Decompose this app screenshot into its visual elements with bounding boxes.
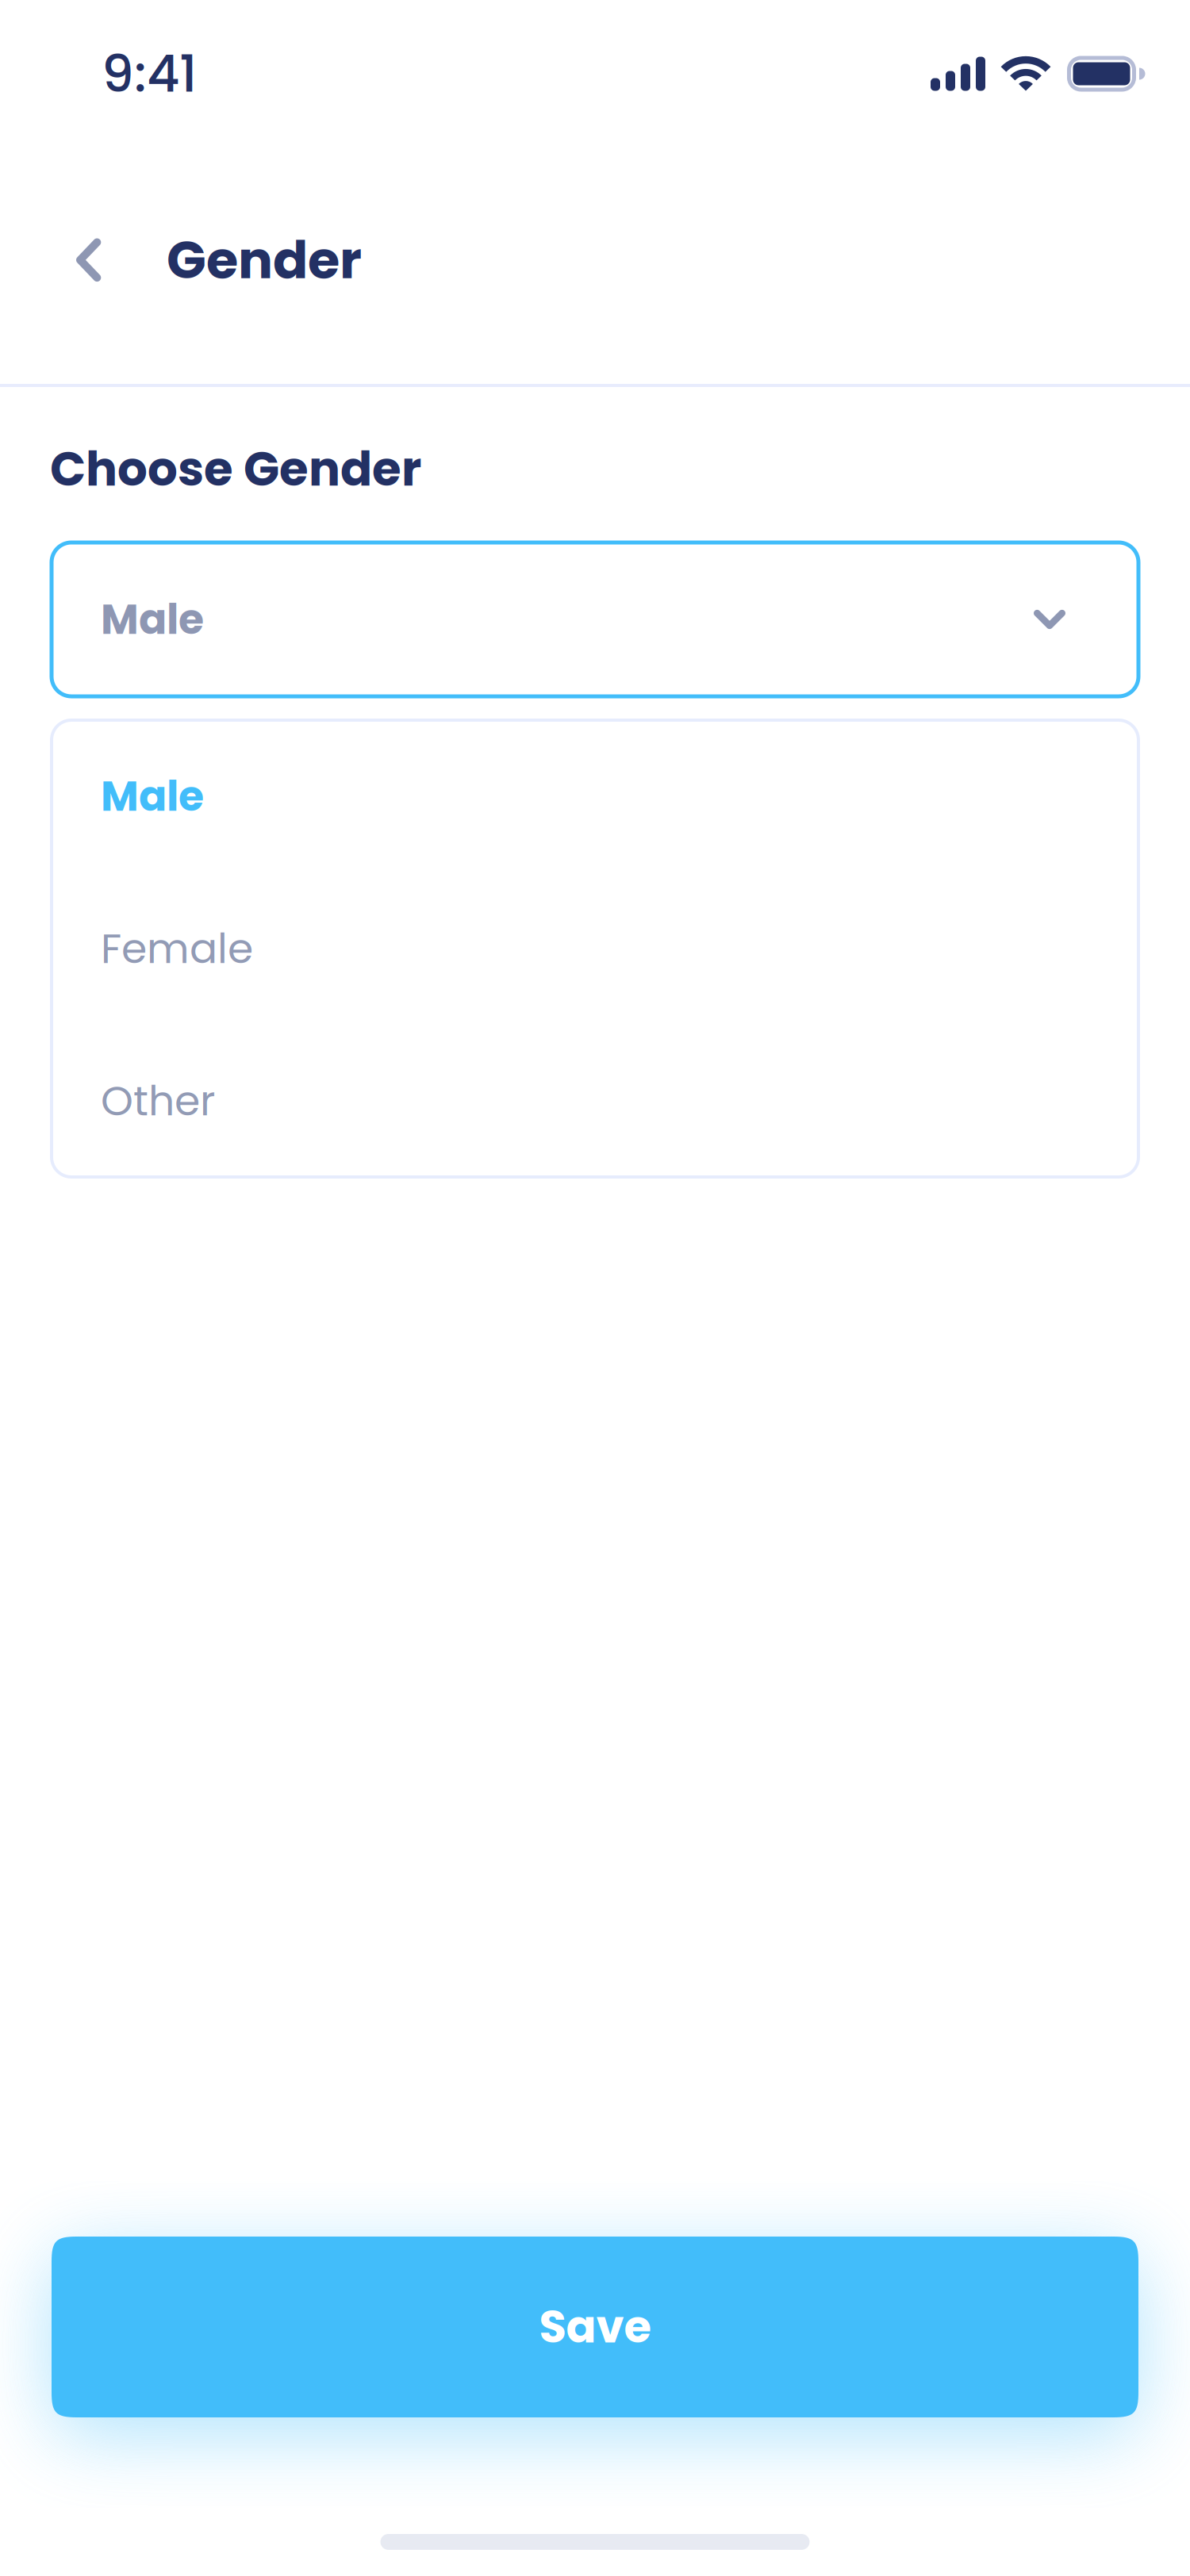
button[interactable]: Female: [52, 872, 1138, 1025]
button[interactable]: Back: [53, 224, 125, 296]
button[interactable]: Male: [52, 720, 1138, 872]
staticText: Save: [539, 2296, 651, 2358]
staticText: Male: [101, 591, 204, 648]
staticText: Female: [101, 920, 253, 977]
staticText: Choose Gender: [50, 436, 421, 502]
button[interactable]: Save: [52, 2237, 1138, 2417]
staticText: 9:41: [102, 38, 197, 109]
button[interactable]: Male: [52, 542, 1138, 696]
staticText: Other: [101, 1072, 215, 1130]
staticText: Male: [101, 767, 204, 825]
staticText: Gender: [167, 224, 362, 296]
button[interactable]: Other: [52, 1025, 1138, 1177]
